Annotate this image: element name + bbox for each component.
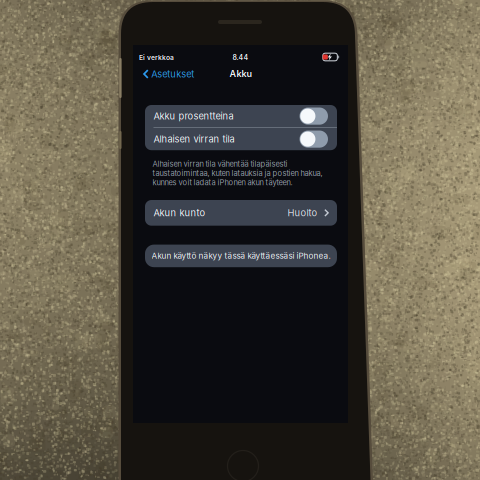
staticText: Huolto bbox=[287, 207, 317, 218]
button[interactable]: Akun kunto bbox=[145, 200, 337, 226]
button[interactable]: Akku prosentteina bbox=[145, 105, 337, 127]
staticText: Alhaisen virran tila bbox=[153, 133, 234, 145]
button[interactable]: Alhaisen virran tila bbox=[145, 128, 337, 150]
staticText: Alhaisen virran tila vähentää tilapäises… bbox=[152, 159, 322, 187]
staticText: Akku prosentteina bbox=[153, 110, 233, 122]
staticText: Akun käyttö näkyy tässä käyttäessäsi iPh… bbox=[151, 251, 330, 261]
staticText: 8.44 bbox=[232, 53, 248, 62]
staticText: Akku bbox=[229, 68, 252, 79]
staticText: Akun kunto bbox=[153, 207, 205, 218]
button[interactable]: Asetukset bbox=[136, 65, 200, 83]
staticText: Ei verkkoa bbox=[139, 53, 174, 62]
staticText: Asetukset bbox=[151, 68, 194, 80]
